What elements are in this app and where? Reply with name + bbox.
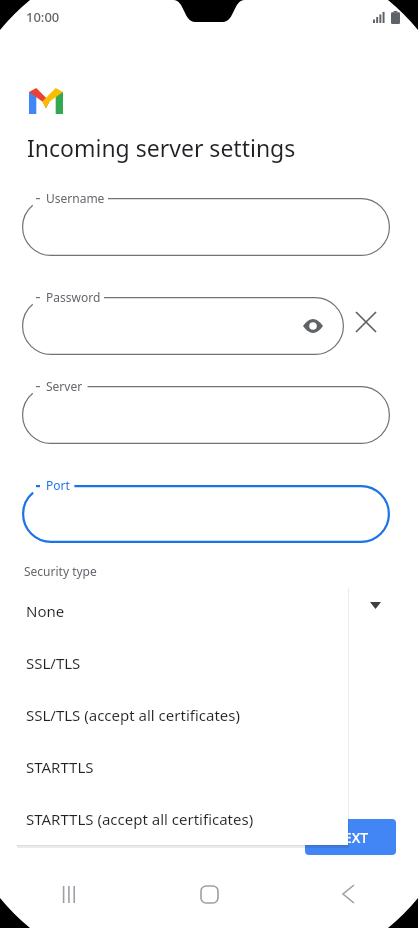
button[interactable]: Show password <box>296 309 330 343</box>
button[interactable]: Password <box>22 288 344 355</box>
button[interactable]: Home <box>140 860 279 928</box>
button[interactable]: Server <box>22 377 390 444</box>
staticText: SSL/TLS <box>26 653 81 673</box>
button[interactable]: Clear password <box>344 300 388 344</box>
staticText: SSL/TLS (accept all certificates) <box>26 705 240 725</box>
staticText: Username <box>46 190 105 206</box>
staticText: STARTTLS <box>26 757 94 777</box>
button[interactable]: Port <box>22 476 390 543</box>
staticText: NEXT <box>333 828 369 847</box>
button[interactable]: STARTTLS <box>16 741 348 793</box>
button[interactable]: Username <box>22 189 390 256</box>
staticText: Port <box>46 477 70 493</box>
staticText: 10:00 <box>26 8 60 26</box>
button[interactable]: SSL/TLS <box>16 637 348 689</box>
button[interactable]: Recent apps <box>0 860 140 928</box>
button[interactable]: None <box>16 585 348 637</box>
staticText: STARTTLS (accept all certificates) <box>26 809 254 829</box>
staticText: Incoming server settings <box>27 132 296 163</box>
button[interactable]: STARTTLS (accept all certificates) <box>16 793 348 845</box>
staticText: Password <box>46 289 101 305</box>
button[interactable]: SSL/TLS (accept all certificates) <box>16 689 348 741</box>
button[interactable]: NEXT <box>305 819 396 855</box>
button[interactable]: Open security type menu <box>362 592 388 618</box>
button[interactable]: Back <box>279 860 418 928</box>
staticText: None <box>26 601 65 621</box>
staticText: Security type <box>24 563 97 579</box>
staticText: Server <box>46 378 83 394</box>
